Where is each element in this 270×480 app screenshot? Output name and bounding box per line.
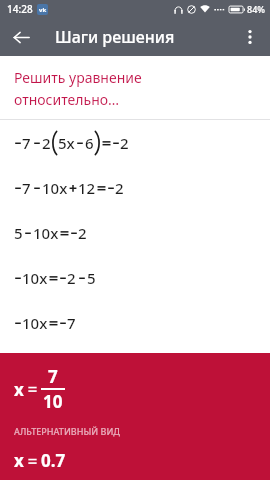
staticText: 7	[48, 365, 58, 388]
button[interactable]: 5	[0, 210, 270, 255]
staticText: 84%	[247, 3, 265, 15]
staticText: 2	[78, 223, 87, 243]
staticText: 7	[67, 313, 76, 333]
staticText: Решить уравнение	[14, 68, 142, 87]
staticText: 2	[42, 133, 51, 153]
button[interactable]: Ещё	[233, 20, 267, 54]
staticText: 2	[67, 268, 76, 288]
staticText: 10	[43, 390, 63, 413]
button[interactable]: 7	[0, 165, 270, 210]
button[interactable]: 10x	[0, 255, 270, 300]
staticText: Шаги решения	[55, 26, 175, 48]
staticText: 10x	[22, 268, 48, 288]
staticText: АЛЬТЕРНАТИВНЫЙ ВИД	[14, 425, 120, 437]
staticText: 2	[120, 133, 129, 153]
staticText: 6	[85, 133, 94, 153]
button[interactable]: x	[0, 353, 270, 480]
staticText: 2	[115, 178, 124, 198]
staticText: 5	[14, 223, 23, 243]
staticText: 12	[78, 178, 96, 198]
staticText: 5x	[58, 133, 75, 153]
staticText: 7	[22, 178, 31, 198]
staticText: 0.7	[41, 449, 66, 472]
button[interactable]: Назад	[4, 20, 38, 54]
staticText: 10x	[22, 313, 48, 333]
staticText: x	[14, 449, 24, 472]
staticText: 10x	[33, 223, 59, 243]
staticText: 14:28	[7, 2, 33, 16]
staticText: 7	[22, 133, 31, 153]
button[interactable]: 7	[0, 120, 270, 165]
staticText: x	[14, 378, 24, 401]
staticText: относительно…	[14, 90, 120, 109]
staticText: vk	[39, 6, 47, 14]
button[interactable]: 10x	[0, 300, 270, 345]
staticText: 5	[87, 268, 96, 288]
staticText: 10x	[42, 178, 68, 198]
